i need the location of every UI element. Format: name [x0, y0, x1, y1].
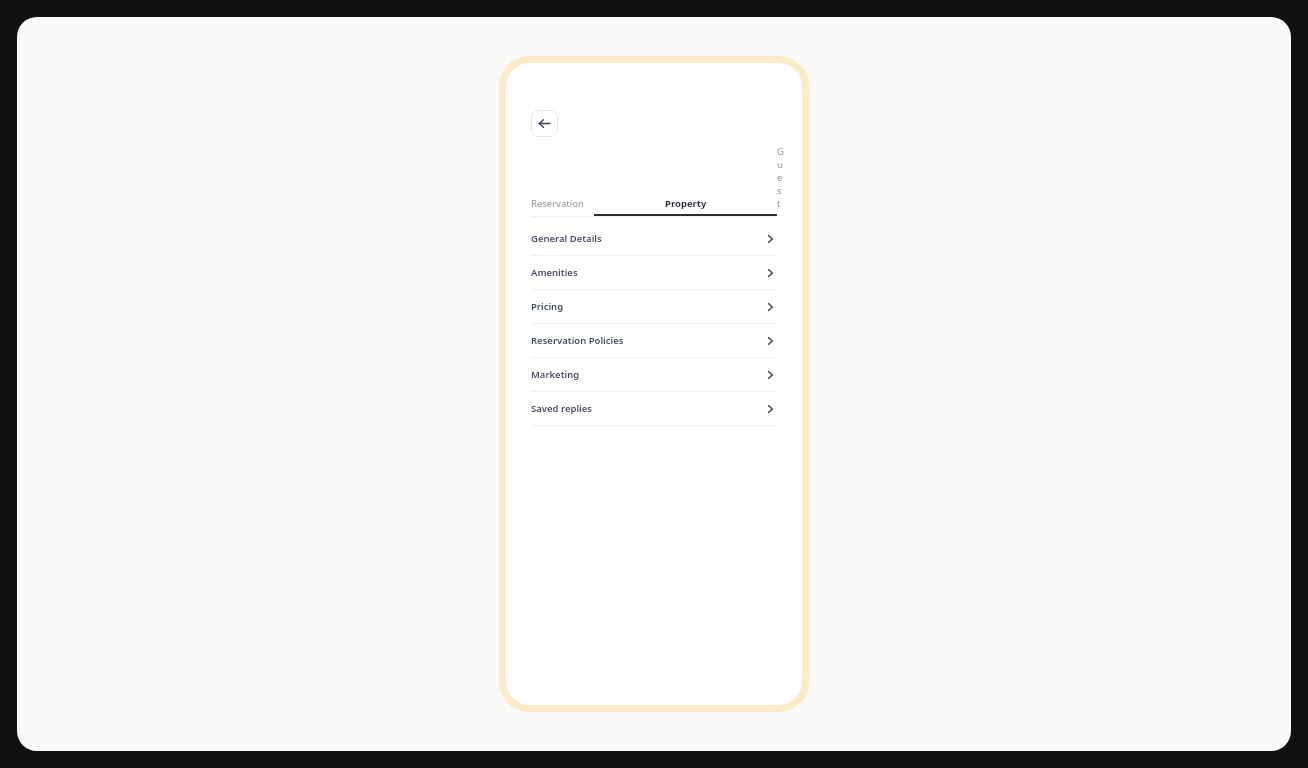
staticText: Saved replies: [531, 402, 763, 415]
button[interactable]: Back: [531, 110, 558, 137]
button[interactable]: Reservation: [531, 197, 584, 216]
staticText: Pricing: [531, 300, 763, 313]
staticText: Reservation: [531, 197, 584, 210]
staticText: Marketing: [531, 368, 763, 381]
button[interactable]: Amenities: [531, 256, 777, 289]
button[interactable]: Property: [594, 197, 777, 216]
button[interactable]: Reservation Policies: [531, 324, 777, 357]
staticText: Reservation Policies: [531, 334, 763, 347]
button[interactable]: General Details: [531, 222, 777, 255]
staticText: Amenities: [531, 266, 763, 279]
button[interactable]: Pricing: [531, 290, 777, 323]
button[interactable]: Saved replies: [531, 392, 777, 425]
button[interactable]: Marketing: [531, 358, 777, 391]
staticText: Property: [665, 197, 707, 210]
staticText: General Details: [531, 232, 763, 245]
